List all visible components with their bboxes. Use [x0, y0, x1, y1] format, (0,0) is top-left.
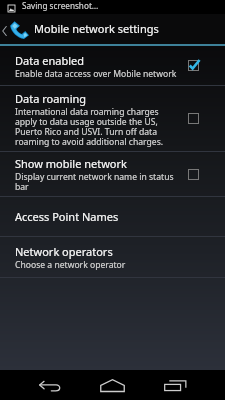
staticText: Access Point Names	[15, 211, 119, 224]
staticText: Display current network name in status b…	[15, 172, 174, 192]
button[interactable]: Home	[81, 370, 143, 400]
button[interactable]: Back	[19, 370, 81, 400]
other: Unchecked	[188, 113, 199, 124]
staticText: Mobile network settings	[34, 23, 159, 36]
staticText: Saving screenshot…	[22, 2, 99, 12]
button[interactable]: Navigate up	[0, 14, 225, 44]
button[interactable]: Show mobile network	[0, 152, 225, 196]
staticText: Data enabled	[15, 55, 84, 68]
staticText: Data roaming	[15, 93, 87, 106]
staticText: Enable data access over Mobile network	[15, 69, 177, 79]
staticText: Choose a network operator	[15, 260, 126, 270]
button[interactable]: Network operators	[0, 237, 225, 277]
other: Checked	[188, 60, 199, 71]
button[interactable]: Data enabled	[0, 46, 225, 85]
button[interactable]: Recent apps	[143, 370, 208, 400]
button[interactable]: Data roaming	[0, 86, 225, 151]
other: Unchecked	[188, 169, 199, 180]
staticText: Network operators	[15, 246, 113, 259]
staticText: Show mobile network	[15, 158, 127, 171]
other: Navigate up	[2, 26, 7, 36]
staticText: International data roaming charges apply…	[15, 107, 164, 147]
button[interactable]: Access Point Names	[0, 197, 225, 236]
